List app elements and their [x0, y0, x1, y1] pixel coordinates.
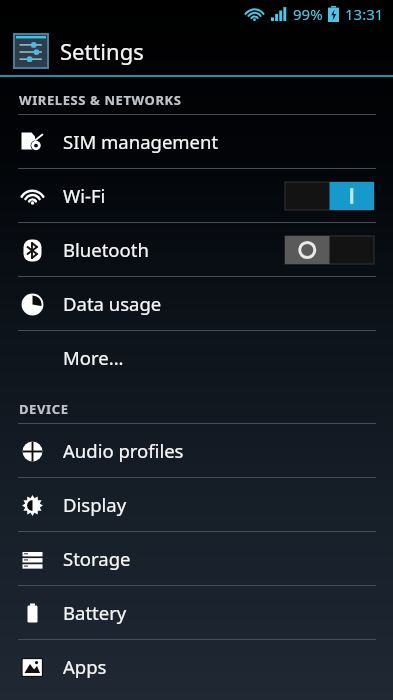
staticText: More...: [63, 345, 124, 370]
staticText: 13:31: [345, 4, 384, 24]
button[interactable]: SIM management: [0, 115, 393, 168]
button[interactable]: Data usage: [0, 277, 393, 330]
staticText: Display: [63, 492, 127, 517]
staticText: Battery: [63, 600, 127, 625]
staticText: 99%: [293, 4, 323, 24]
button[interactable]: Off: [285, 236, 374, 264]
button[interactable]: Apps: [0, 640, 393, 693]
staticText: Audio profiles: [63, 438, 184, 463]
button[interactable]: On: [285, 182, 374, 210]
button[interactable]: Storage: [0, 532, 393, 585]
button[interactable]: Audio profiles: [0, 424, 393, 477]
button[interactable]: Bluetooth: [0, 223, 393, 276]
staticText: SIM management: [63, 129, 219, 154]
button[interactable]: Battery: [0, 586, 393, 639]
staticText: Wi-Fi: [63, 183, 106, 208]
button[interactable]: Wi-Fi: [0, 169, 393, 222]
button[interactable]: Settings: [0, 27, 393, 75]
staticText: Data usage: [63, 291, 162, 316]
staticText: Apps: [63, 654, 107, 679]
staticText: DEVICE: [19, 400, 69, 418]
button[interactable]: Display: [0, 478, 393, 531]
staticText: Storage: [63, 546, 131, 571]
staticText: WIRELESS & NETWORKS: [19, 91, 182, 109]
button[interactable]: More...: [0, 331, 393, 384]
staticText: Settings: [60, 36, 144, 66]
staticText: Bluetooth: [63, 237, 149, 262]
